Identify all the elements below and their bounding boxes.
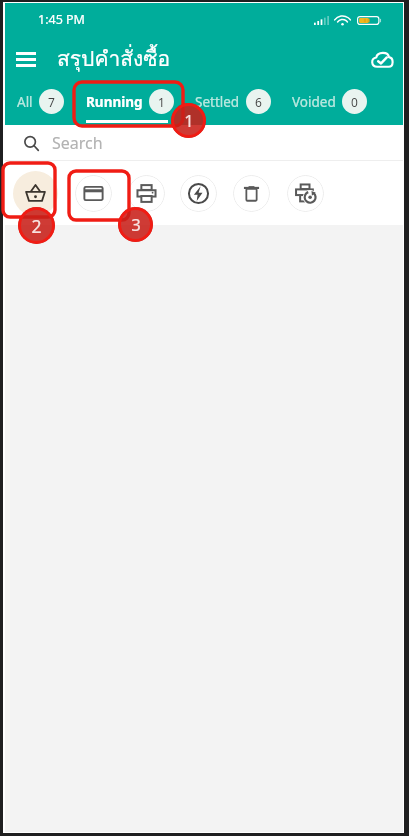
staticText: Voided — [292, 93, 336, 111]
staticText: 0 — [351, 94, 358, 110]
staticText: 1:45 PM — [38, 11, 85, 28]
staticText: 7 — [48, 94, 55, 110]
button[interactable]: All — [5, 81, 76, 125]
button[interactable]: Delete — [226, 168, 276, 218]
button[interactable]: Menu — [10, 43, 42, 75]
staticText: 2 — [31, 214, 42, 238]
button[interactable]: Cloud sync — [365, 42, 399, 76]
button[interactable]: Settled — [184, 81, 281, 125]
staticText: Running — [86, 93, 143, 111]
staticText: 6 — [255, 94, 262, 110]
button[interactable]: Voided — [281, 81, 378, 125]
button[interactable]: Reprint history — [280, 168, 330, 218]
staticText: Settled — [195, 93, 240, 111]
button[interactable]: Quick charge — [173, 168, 223, 218]
staticText: 1 — [158, 94, 165, 110]
button[interactable]: Card payment — [68, 168, 118, 218]
button[interactable]: Running — [76, 81, 184, 125]
staticText: สรุปคำสั่งซื้อ — [57, 42, 171, 75]
button[interactable]: Print receipt — [121, 168, 171, 218]
staticText: 3 — [131, 213, 141, 236]
staticText: All — [17, 93, 33, 111]
button[interactable]: Orders — [10, 168, 60, 218]
staticText: Search — [52, 132, 103, 154]
button[interactable]: Search — [5, 125, 403, 161]
staticText: 1 — [184, 109, 194, 132]
